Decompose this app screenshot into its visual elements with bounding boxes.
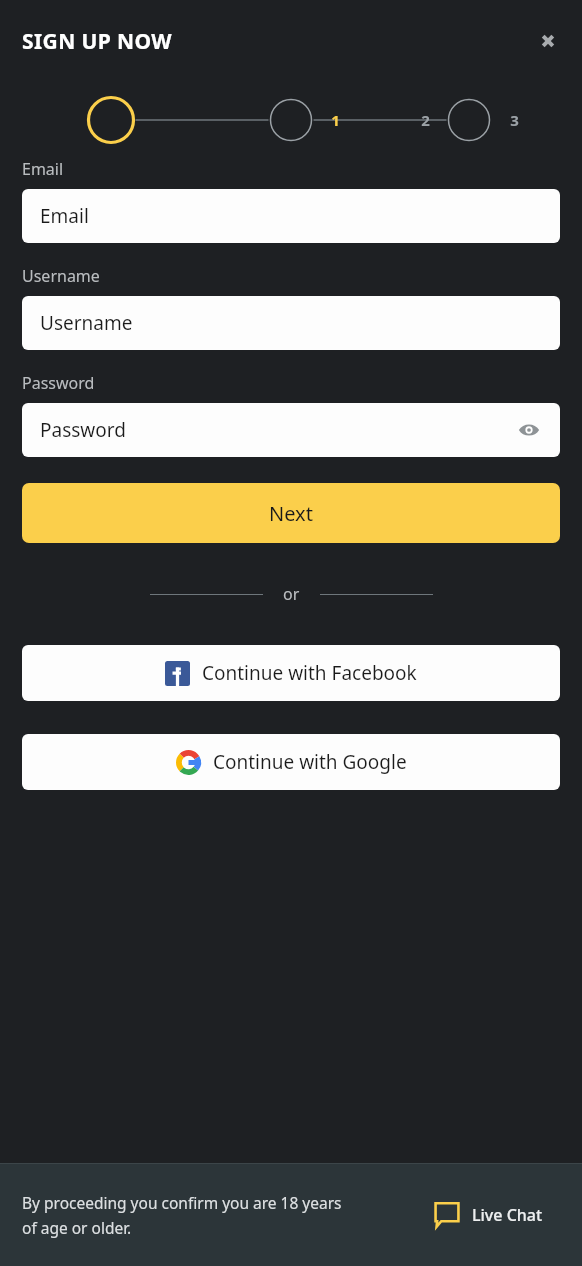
button[interactable]: Step 2 [402, 97, 448, 143]
button[interactable]: Live Chat [434, 1202, 543, 1228]
staticText: 2 [421, 110, 430, 130]
staticText: SIGN UP NOW [22, 27, 173, 56]
button[interactable]: Continue with Facebook [22, 645, 560, 701]
staticText: Next [269, 500, 313, 527]
button[interactable]: Show password [512, 413, 546, 447]
staticText: Continue with Google [213, 749, 407, 775]
staticText: Live Chat [472, 1204, 543, 1226]
button[interactable]: Email [22, 189, 560, 243]
staticText: By proceeding you confirm you are 18 yea… [22, 1192, 412, 1239]
staticText: 1 [331, 110, 340, 130]
staticText: 3 [510, 110, 519, 130]
button[interactable]: Step 3 [491, 97, 537, 143]
staticText: Email [22, 158, 64, 180]
button[interactable]: Password [22, 403, 560, 457]
staticText: Continue with Facebook [202, 660, 417, 686]
button[interactable]: Close [528, 21, 568, 61]
button[interactable]: Username [22, 296, 560, 350]
staticText: Password [40, 417, 126, 443]
staticText: Password [22, 372, 95, 394]
staticText: Username [40, 310, 133, 336]
button[interactable]: Next [22, 483, 560, 543]
staticText: Username [22, 265, 100, 287]
button[interactable]: Continue with Google [22, 734, 560, 790]
staticText: Email [40, 203, 89, 229]
staticText: or [283, 583, 300, 605]
button[interactable]: Step 1 [312, 97, 358, 143]
